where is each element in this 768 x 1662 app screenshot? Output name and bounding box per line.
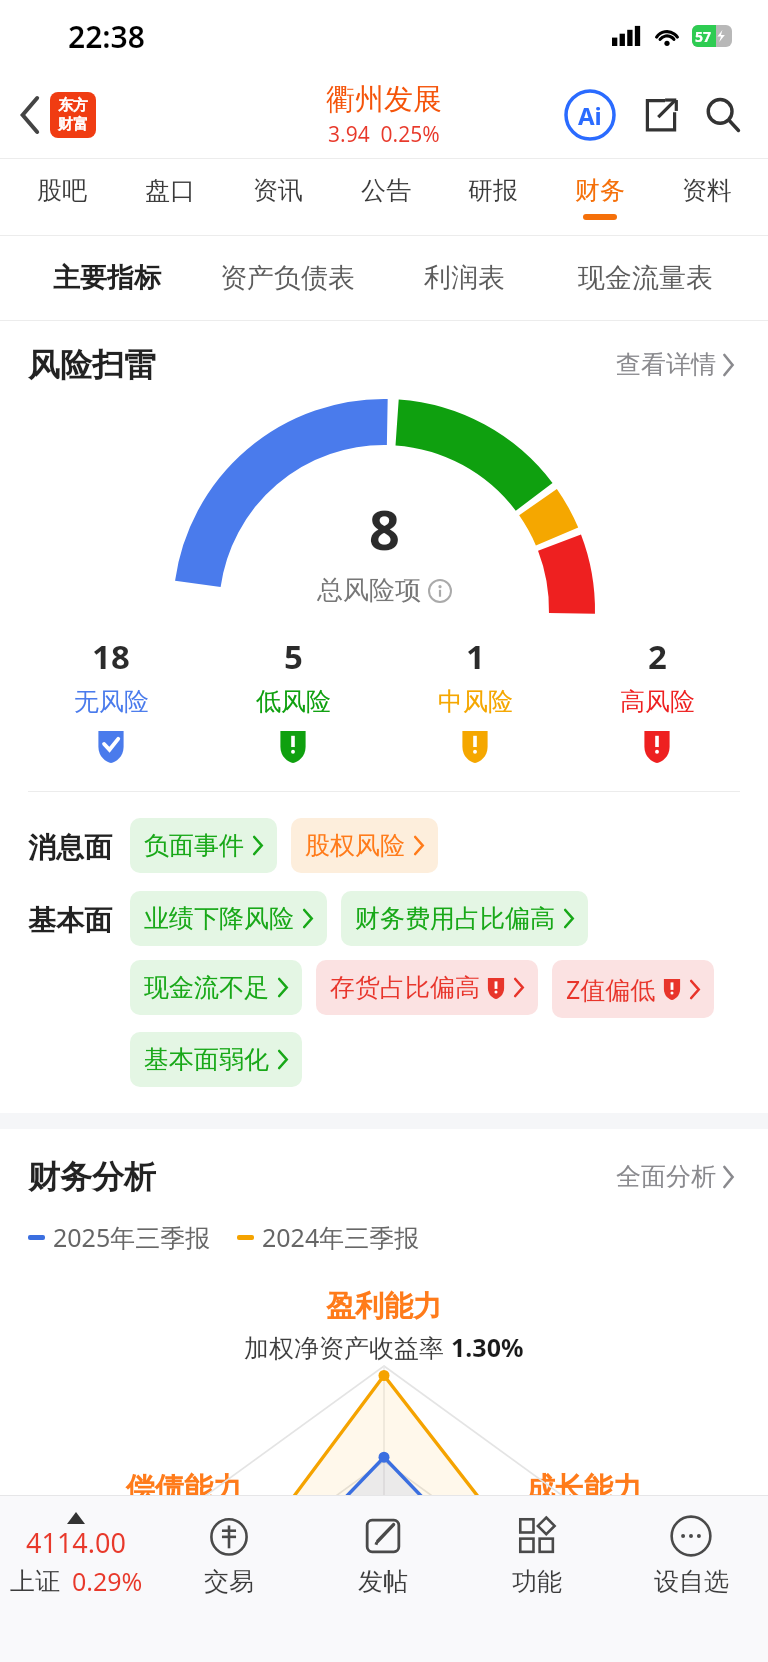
button[interactable]: Z值偏低: [552, 960, 714, 1018]
staticText: 存货占比偏高: [330, 972, 480, 1003]
button[interactable]: 存货占比偏高: [316, 960, 538, 1015]
button[interactable]: 18: [20, 634, 202, 763]
staticText: 1.30%: [451, 1330, 524, 1364]
button[interactable]: 现金流量表: [542, 236, 748, 320]
staticText: 资讯: [253, 175, 303, 206]
staticText: 公告: [361, 175, 411, 206]
staticText: 57: [695, 27, 712, 46]
staticText: 设自选: [654, 1566, 729, 1597]
button[interactable]: 资产负债表: [189, 236, 386, 320]
staticText: 财务分析: [28, 1157, 156, 1197]
button[interactable]: 资讯: [224, 159, 332, 235]
staticText: 全面分析: [616, 1161, 716, 1192]
staticText: 财务: [575, 175, 625, 206]
staticText: 低风险: [256, 686, 331, 717]
button[interactable]: 基本面弱化: [130, 1032, 302, 1087]
button[interactable]: 利润表: [386, 236, 542, 320]
staticText: 资产负债表: [220, 261, 355, 295]
staticText: Z值偏低: [566, 972, 656, 1006]
staticText: 东方: [58, 96, 88, 115]
staticText: 利润表: [424, 261, 505, 295]
staticText: 2024年三季报: [262, 1220, 420, 1254]
staticText: 高风险: [620, 686, 695, 717]
staticText: 加权净资产收益率: [244, 1330, 451, 1364]
staticText: 现金流量表: [578, 261, 713, 295]
staticText: 财富: [58, 115, 88, 134]
staticText: 研报: [468, 175, 518, 206]
button[interactable]: 5: [202, 634, 384, 763]
button[interactable]: 发帖: [306, 1496, 460, 1614]
button[interactable]: 负面事件: [130, 818, 277, 873]
staticText: 8: [369, 492, 400, 566]
button[interactable]: 4114.00: [0, 1512, 152, 1598]
staticText: 交易: [204, 1566, 254, 1597]
staticText: 查看详情: [616, 349, 716, 380]
staticText: 4114.00: [26, 1524, 126, 1561]
staticText: 3.94 0.25%: [328, 120, 440, 149]
button[interactable]: 财务费用占比偏高: [341, 891, 588, 946]
button[interactable]: 股吧: [8, 159, 116, 235]
staticText: 22:38: [68, 16, 145, 57]
button[interactable]: 设自选: [614, 1496, 768, 1614]
staticText: 2: [648, 634, 667, 679]
staticText: 消息面: [28, 830, 112, 865]
staticText: 基本面弱化: [144, 1044, 269, 1075]
button[interactable]: Back: [14, 86, 102, 144]
staticText: 中风险: [438, 686, 513, 717]
button[interactable]: 功能: [460, 1496, 614, 1614]
button[interactable]: Search: [700, 92, 746, 138]
staticText: 1: [466, 634, 485, 679]
button[interactable]: 主要指标: [24, 236, 189, 320]
staticText: 现金流不足: [144, 972, 269, 1003]
button[interactable]: 财务: [546, 159, 653, 235]
staticText: 负面事件: [144, 830, 244, 861]
button[interactable]: 盘口: [116, 159, 224, 235]
button[interactable]: 研报: [439, 159, 546, 235]
staticText: 发帖: [358, 1566, 408, 1597]
staticText: 盈利能力: [326, 1288, 442, 1325]
button[interactable]: 资料: [653, 159, 760, 235]
staticText: 股吧: [37, 175, 87, 206]
button[interactable]: Share: [638, 92, 684, 138]
staticText: 衢州发展: [326, 81, 442, 118]
staticText: 盘口: [145, 175, 195, 206]
staticText: 5: [284, 634, 303, 679]
button[interactable]: 业绩下降风险: [130, 891, 327, 946]
staticText: 成长能力: [526, 1470, 642, 1507]
button[interactable]: 公告: [332, 159, 439, 235]
staticText: 功能: [512, 1566, 562, 1597]
staticText: 2025年三季报: [53, 1220, 211, 1254]
staticText: 无风险: [74, 686, 149, 717]
staticText: 财务费用占比偏高: [355, 903, 555, 934]
staticText: 总风险项: [317, 574, 421, 607]
button[interactable]: 2: [566, 634, 748, 763]
staticText: 0.29%: [72, 1564, 143, 1598]
button[interactable]: 现金流不足: [130, 960, 302, 1015]
staticText: 偿债能力: [126, 1470, 242, 1507]
button[interactable]: AI assistant: [564, 89, 616, 141]
button[interactable]: 全面分析: [610, 1155, 740, 1198]
staticText: 资料: [682, 175, 732, 206]
button[interactable]: 查看详情: [610, 343, 740, 386]
staticText: 主要指标: [53, 261, 161, 295]
staticText: Ai: [578, 99, 602, 132]
button[interactable]: 股权风险: [291, 818, 438, 873]
staticText: 股权风险: [305, 830, 405, 861]
staticText: 业绩下降风险: [144, 903, 294, 934]
staticText: 18: [92, 634, 130, 679]
staticText: 上证: [10, 1566, 60, 1597]
staticText: 风险扫雷: [28, 345, 156, 385]
button[interactable]: 交易: [152, 1496, 306, 1614]
button[interactable]: 1: [384, 634, 566, 763]
staticText: 基本面: [28, 903, 112, 938]
